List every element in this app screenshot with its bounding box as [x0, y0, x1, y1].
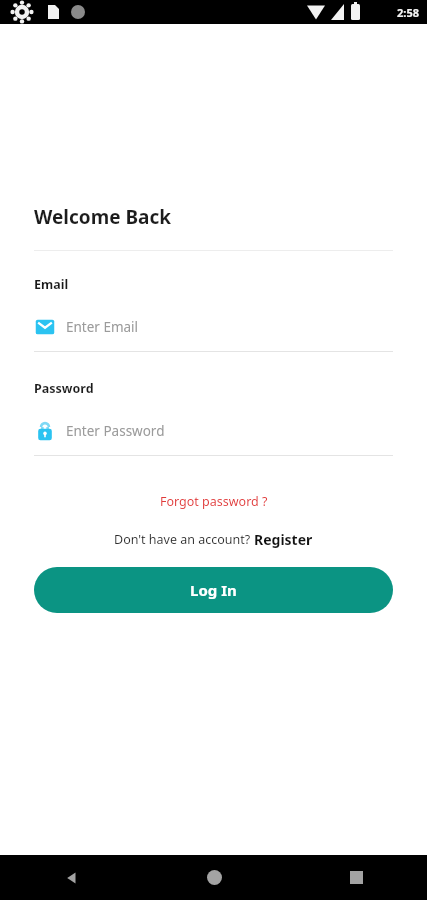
staticText: Password [34, 380, 94, 397]
other: Password [34, 420, 56, 442]
staticText: Log In [190, 580, 237, 600]
button[interactable]: Register [254, 530, 313, 549]
button[interactable]: Password [34, 418, 393, 444]
staticText: Enter Password [66, 422, 165, 440]
button[interactable]: Home [143, 855, 285, 900]
staticText: Register [254, 530, 313, 549]
other: Email [34, 316, 56, 338]
button[interactable]: Email [34, 314, 393, 340]
staticText: Forgot password ? [160, 493, 268, 510]
staticText: Don't have an account? [114, 531, 254, 548]
button[interactable]: Forgot password ? [152, 490, 276, 513]
staticText: Enter Email [66, 318, 139, 336]
staticText: 2:58 [397, 5, 419, 20]
staticText: Welcome Back [34, 204, 172, 230]
button[interactable]: Log In [34, 567, 393, 613]
staticText: Email [34, 276, 69, 293]
button[interactable]: Recent apps [285, 855, 427, 900]
button[interactable]: Back [0, 855, 143, 900]
